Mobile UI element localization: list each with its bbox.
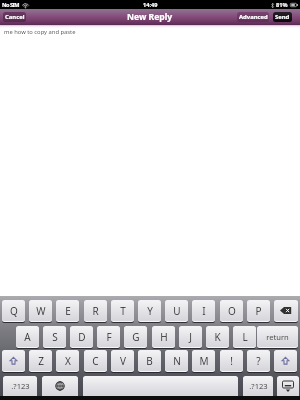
staticText: .?123 xyxy=(249,381,268,391)
button[interactable]: ? xyxy=(247,350,270,371)
staticText: Q xyxy=(10,304,18,318)
button[interactable]: D xyxy=(70,326,93,347)
staticText: ? xyxy=(256,354,261,368)
button[interactable]: Backspace xyxy=(274,300,298,321)
button[interactable]: B xyxy=(138,350,161,371)
button[interactable]: Space xyxy=(83,376,238,396)
button[interactable]: .?123 xyxy=(243,376,273,396)
staticText: 81% xyxy=(276,1,288,9)
staticText: T xyxy=(120,304,126,318)
button[interactable]: I xyxy=(192,300,215,321)
staticText: D xyxy=(78,330,86,344)
button[interactable]: Y xyxy=(138,300,161,321)
staticText: No SIM xyxy=(2,1,20,9)
button[interactable]: return xyxy=(257,326,298,347)
button[interactable]: Cancel xyxy=(3,12,26,22)
staticText: V xyxy=(120,354,126,368)
button[interactable]: Next keyboard xyxy=(42,376,78,396)
button[interactable]: Z xyxy=(29,350,52,371)
button[interactable]: P xyxy=(247,300,270,321)
button[interactable]: U xyxy=(165,300,188,321)
button[interactable]: .?123 xyxy=(3,376,37,396)
staticText: X xyxy=(65,354,71,368)
staticText: I xyxy=(202,304,206,318)
staticText: P xyxy=(255,304,262,318)
button[interactable]: T xyxy=(111,300,134,321)
button[interactable]: G xyxy=(124,326,147,347)
staticText: L xyxy=(242,330,248,344)
button[interactable]: ! xyxy=(220,350,243,371)
button[interactable]: N xyxy=(165,350,188,371)
staticText: O xyxy=(228,304,236,318)
staticText: return xyxy=(266,332,289,342)
staticText: Cancel xyxy=(5,13,25,21)
button[interactable]: V xyxy=(111,350,134,371)
staticText: F xyxy=(106,330,112,344)
button[interactable]: Shift xyxy=(2,350,25,371)
button[interactable]: L xyxy=(233,326,256,347)
staticText: W xyxy=(36,304,46,318)
button[interactable]: R xyxy=(84,300,107,321)
button[interactable]: H xyxy=(152,326,175,347)
button[interactable]: E xyxy=(56,300,79,321)
button[interactable]: Hide keyboard xyxy=(277,376,299,396)
staticText: me how to copy and paste xyxy=(4,28,76,36)
staticText: Y xyxy=(147,304,153,318)
staticText: E xyxy=(65,304,71,318)
button[interactable]: Shift xyxy=(274,350,297,371)
staticText: S xyxy=(52,330,58,344)
button[interactable]: X xyxy=(56,350,79,371)
staticText: Z xyxy=(38,354,44,368)
staticText: N xyxy=(173,354,181,368)
button[interactable]: S xyxy=(43,326,66,347)
staticText: .?123 xyxy=(11,381,30,391)
staticText: 14:49 xyxy=(143,1,158,9)
staticText: ! xyxy=(230,354,233,368)
staticText: A xyxy=(24,330,31,344)
button[interactable]: Advanced xyxy=(237,12,269,22)
staticText: Advanced xyxy=(239,13,268,21)
staticText: R xyxy=(92,304,99,318)
button[interactable]: W xyxy=(29,300,52,321)
staticText: M xyxy=(199,354,209,368)
button[interactable]: A xyxy=(16,326,39,347)
staticText: New Reply xyxy=(127,11,173,23)
button[interactable]: F xyxy=(97,326,120,347)
staticText: Send xyxy=(275,13,290,21)
button[interactable]: K xyxy=(206,326,229,347)
button[interactable]: M xyxy=(192,350,215,371)
button[interactable]: J xyxy=(179,326,202,347)
staticText: B xyxy=(146,354,153,368)
button[interactable]: C xyxy=(84,350,107,371)
button[interactable]: Q xyxy=(2,300,25,321)
staticText: G xyxy=(132,330,140,344)
staticText: H xyxy=(160,330,168,344)
staticText: C xyxy=(92,354,99,368)
staticText: K xyxy=(214,330,221,344)
staticText: U xyxy=(173,304,181,318)
button[interactable]: O xyxy=(220,300,243,321)
staticText: J xyxy=(189,330,192,344)
button[interactable]: Send xyxy=(273,12,292,22)
